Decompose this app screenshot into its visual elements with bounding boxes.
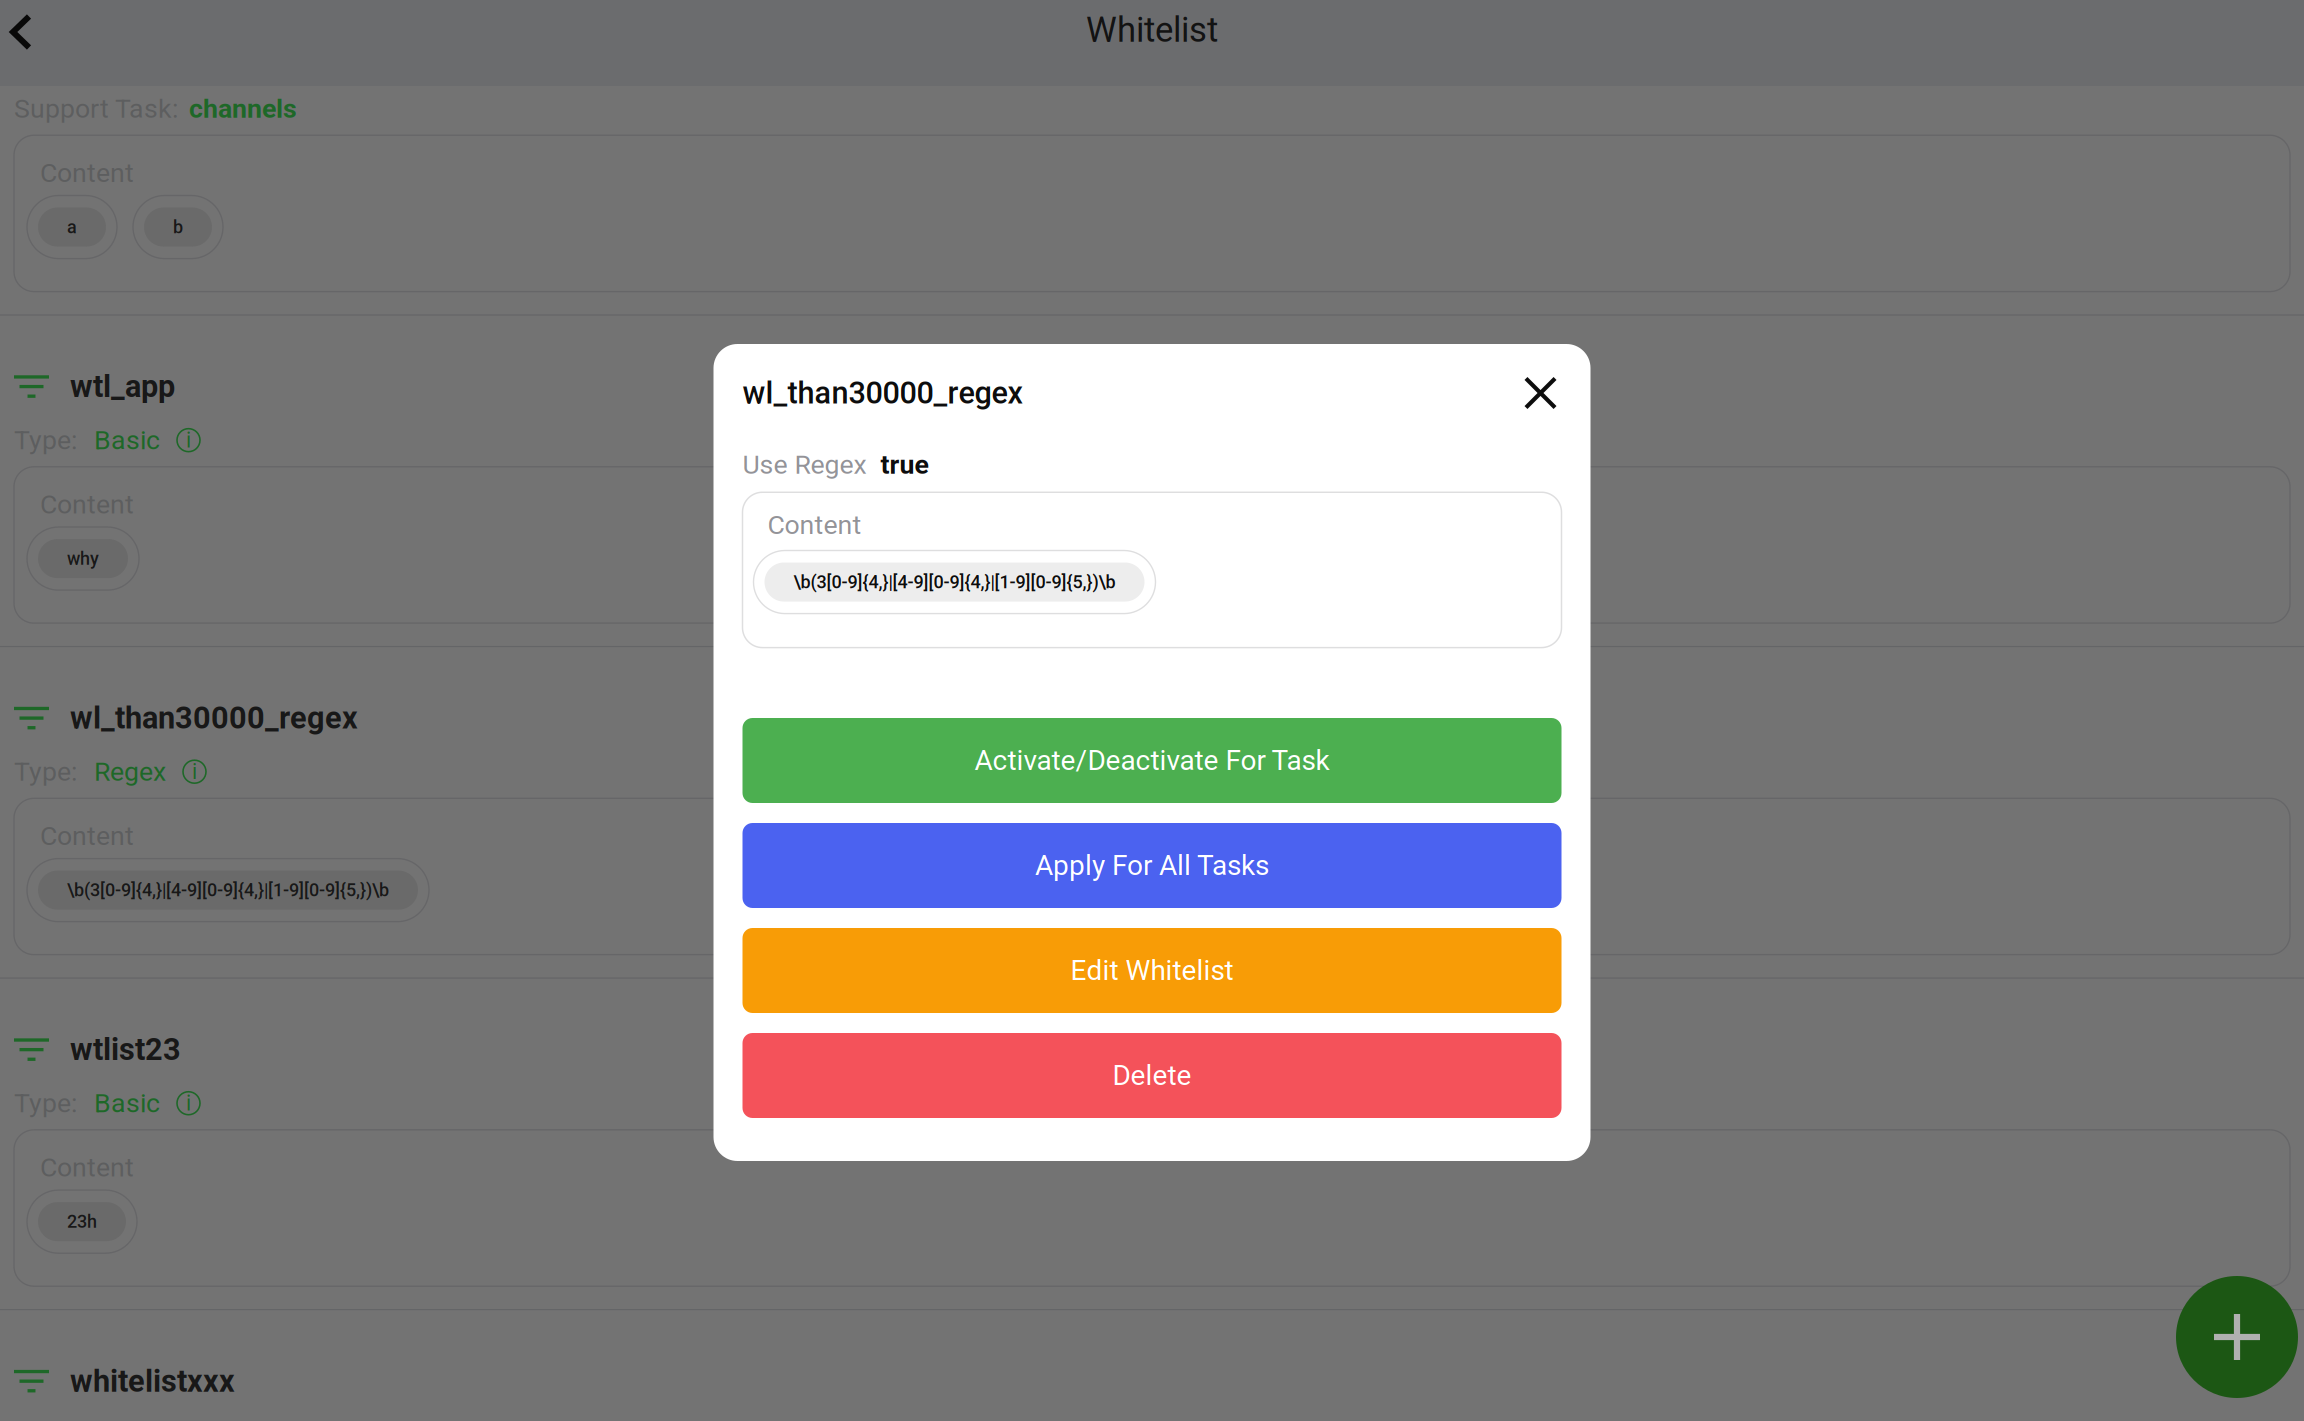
staticText: a <box>67 216 77 238</box>
staticText: wtl_app <box>70 369 175 404</box>
staticText: \b(3[0-9]{4,}|[4-9][0-9]{4,}|[1-9][0-9]{… <box>793 571 1115 593</box>
staticText: i <box>186 428 191 453</box>
button[interactable]: Edit Whitelist <box>742 928 1561 1013</box>
button[interactable]: Apply For All Tasks <box>742 823 1561 908</box>
staticText: Support Task: <box>14 93 178 124</box>
staticText: Activate/Deactivate For Task <box>974 744 1329 777</box>
staticText: Content <box>40 1152 134 1183</box>
staticText: channels <box>189 93 297 124</box>
button[interactable]: Back <box>0 10 58 75</box>
staticText: Delete <box>1112 1059 1191 1092</box>
button[interactable]: wl_than30000_regex <box>0 647 2304 979</box>
staticText: wl_than30000_regex <box>742 375 1022 411</box>
staticText: Edit Whitelist <box>1070 954 1233 987</box>
staticText: \b(3[0-9]{4,}|[4-9][0-9]{4,}|[1-9][0-9]{… <box>67 880 389 901</box>
button[interactable]: Add whitelist <box>2176 1276 2298 1398</box>
button[interactable]: Activate/Deactivate For Task <box>742 718 1561 803</box>
staticText: Content <box>40 157 134 189</box>
button[interactable]: wtlist23 <box>0 979 2304 1310</box>
staticText: Basic <box>94 1088 160 1119</box>
staticText: Apply For All Tasks <box>1035 849 1269 882</box>
staticText: Content <box>40 489 134 520</box>
staticText: Type: <box>14 756 77 787</box>
staticText: b <box>173 216 183 238</box>
button[interactable]: wtl_app <box>0 316 2304 647</box>
staticText: Whitelist <box>1086 10 1218 50</box>
staticText: 23h <box>67 1211 97 1232</box>
button[interactable]: Delete <box>742 1033 1561 1118</box>
staticText: true <box>880 449 928 480</box>
staticText: wl_than30000_regex <box>70 700 358 736</box>
staticText: whitelistxxx <box>70 1363 235 1399</box>
staticText: i <box>186 1091 191 1116</box>
button[interactable]: whitelistxxx <box>0 1310 2304 1399</box>
staticText: Basic <box>94 424 160 456</box>
staticText: Content <box>40 820 134 852</box>
staticText: Content <box>767 509 861 541</box>
staticText: Regex <box>94 756 166 787</box>
staticText: Type: <box>14 424 77 456</box>
staticText: i <box>192 759 197 784</box>
staticText: why <box>67 548 99 569</box>
staticText: wtlist23 <box>70 1032 181 1068</box>
staticText: Use Regex <box>742 449 866 480</box>
button[interactable]: Close <box>1519 372 1561 414</box>
staticText: Type: <box>14 1088 77 1119</box>
